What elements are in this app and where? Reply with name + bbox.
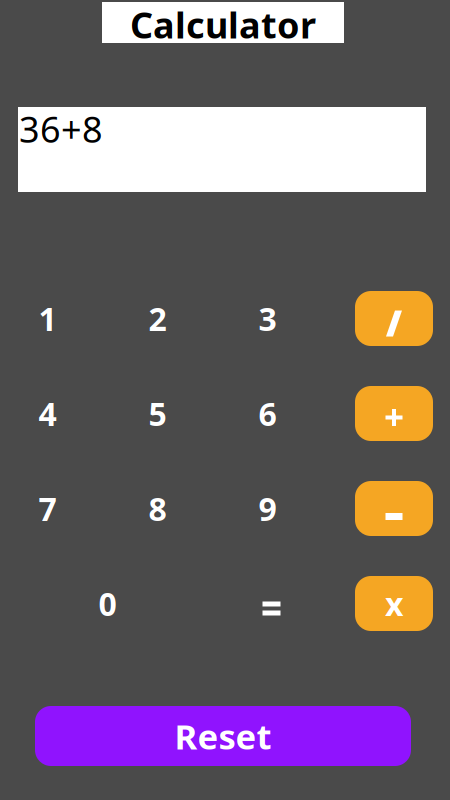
staticText: 2	[148, 297, 166, 340]
button[interactable]: 7	[24, 481, 71, 536]
staticText: 1	[38, 297, 56, 340]
staticText: x	[385, 582, 403, 625]
button[interactable]: 3	[244, 291, 291, 346]
staticText: 5	[148, 392, 166, 435]
button[interactable]: Multiply	[355, 576, 433, 631]
staticText: 8	[148, 487, 166, 530]
button[interactable]: 4	[24, 386, 71, 441]
staticText: 9	[258, 487, 276, 530]
button[interactable]: 1	[24, 291, 71, 346]
button[interactable]: 0	[84, 576, 131, 631]
button[interactable]: 6	[244, 386, 291, 441]
button[interactable]: Add	[355, 386, 433, 441]
staticText: 4	[38, 392, 56, 435]
button[interactable]: 5	[134, 386, 181, 441]
staticText: 0	[98, 582, 116, 625]
button[interactable]: 8	[134, 481, 181, 536]
staticText: Calculator	[130, 1, 316, 48]
button[interactable]: Divide	[355, 291, 433, 346]
button[interactable]: 9	[244, 481, 291, 536]
staticText: 3	[258, 297, 276, 340]
button[interactable]: 2	[134, 291, 181, 346]
button[interactable]: Equals	[248, 576, 295, 631]
staticText: 6	[258, 392, 276, 435]
staticText: 36+8	[19, 105, 103, 153]
staticText: Reset	[174, 713, 271, 759]
staticText: 7	[38, 487, 56, 530]
button[interactable]: Subtract	[355, 481, 433, 536]
button[interactable]: Reset	[35, 706, 411, 766]
